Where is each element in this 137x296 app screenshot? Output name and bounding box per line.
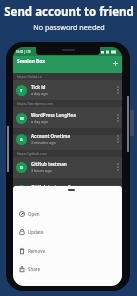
button[interactable]: G (13, 180, 122, 200)
staticText: T (20, 88, 23, 93)
button[interactable]: Remove (13, 242, 122, 260)
button[interactable]: A (13, 129, 122, 149)
staticText: Update (28, 229, 44, 235)
staticText: https://tickid.co (17, 74, 42, 79)
staticText: W (20, 116, 24, 121)
staticText: GitHub testman (31, 161, 67, 167)
staticText: WordPress LongHea (31, 112, 76, 118)
staticText: Account Onetime (31, 133, 71, 139)
staticText: G (20, 165, 23, 170)
staticText: Session Box (17, 58, 45, 65)
staticText: https://wordpress.com (17, 101, 54, 106)
button[interactable] (108, 56, 122, 70)
staticText: Tick id (31, 84, 46, 90)
staticText: Open (28, 211, 40, 217)
staticText: No password needed (33, 22, 105, 32)
button[interactable]: T (13, 80, 122, 100)
staticText: Remove (28, 248, 46, 254)
button[interactable]: Open (13, 205, 122, 223)
staticText: 3 minutes ago (31, 140, 56, 145)
button[interactable]: W (13, 108, 122, 128)
button[interactable]: Update (13, 223, 122, 241)
staticText: A (20, 137, 23, 142)
staticText: Share (28, 266, 41, 272)
staticText: GitHub testman 2 (31, 184, 71, 190)
staticText: 18:02 | LTE (16, 50, 31, 54)
button[interactable]: G (13, 157, 122, 177)
staticText: a day ago (31, 91, 48, 96)
button[interactable]: Share (13, 260, 122, 278)
staticText: https://github.com (17, 151, 47, 156)
staticText: 3 hours ago (31, 168, 52, 173)
staticText: Send account to friend (4, 4, 134, 20)
staticText: a day ago (31, 119, 48, 124)
